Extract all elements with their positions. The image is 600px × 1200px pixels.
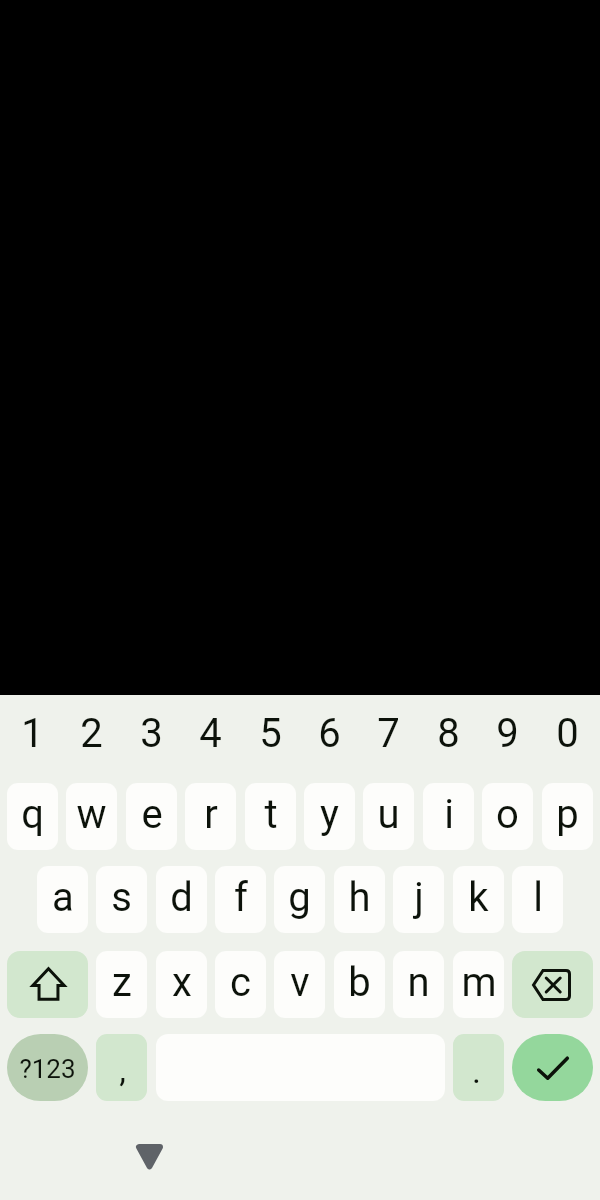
button[interactable]: h <box>334 866 385 933</box>
button[interactable]: 3 <box>122 698 181 770</box>
button[interactable]: s <box>96 866 147 933</box>
staticText: w <box>76 791 107 838</box>
staticText: 5 <box>259 710 282 757</box>
button[interactable]: 8 <box>419 698 478 770</box>
staticText: v <box>290 959 310 1006</box>
staticText: s <box>111 874 132 921</box>
button[interactable]: i <box>423 783 474 850</box>
button[interactable]: t <box>245 783 296 850</box>
staticText: t <box>264 791 278 838</box>
button[interactable]: y <box>304 783 355 850</box>
button[interactable]: n <box>393 951 444 1018</box>
button[interactable]: b <box>334 951 385 1018</box>
button[interactable]: q <box>7 783 58 850</box>
button[interactable]: 2 <box>62 698 121 770</box>
button[interactable]: Symbols <box>7 1034 88 1101</box>
button[interactable]: c <box>215 951 266 1018</box>
staticText: 7 <box>377 710 400 757</box>
button[interactable]: w <box>66 783 117 850</box>
staticText: . <box>472 1051 481 1091</box>
staticText: 2 <box>80 710 103 757</box>
staticText: o <box>496 791 519 838</box>
staticText: u <box>377 791 400 838</box>
button[interactable]: 7 <box>359 698 418 770</box>
staticText: ?123 <box>19 1054 76 1084</box>
staticText: m <box>461 959 497 1006</box>
staticText: y <box>320 791 339 838</box>
button[interactable]: m <box>453 951 504 1018</box>
staticText: c <box>230 959 251 1006</box>
button[interactable]: z <box>96 951 147 1018</box>
staticText: 4 <box>199 710 222 757</box>
staticText: q <box>21 791 44 838</box>
button[interactable]: e <box>126 783 177 850</box>
button[interactable]: 1 <box>3 698 62 770</box>
staticText: x <box>172 959 192 1006</box>
button[interactable]: Period <box>453 1034 504 1101</box>
button[interactable]: Shift <box>7 951 88 1018</box>
staticText: 0 <box>556 710 579 757</box>
button[interactable]: p <box>542 783 593 850</box>
button[interactable]: v <box>274 951 325 1018</box>
button[interactable]: d <box>156 866 207 933</box>
button[interactable]: g <box>274 866 325 933</box>
staticText: a <box>52 874 74 921</box>
staticText: 6 <box>318 710 341 757</box>
staticText: i <box>444 791 454 838</box>
staticText: e <box>141 791 163 838</box>
staticText: g <box>288 874 311 921</box>
staticText: b <box>348 959 371 1006</box>
button[interactable]: u <box>363 783 414 850</box>
staticText: z <box>112 959 132 1006</box>
button[interactable]: Comma <box>96 1034 147 1101</box>
staticText: 3 <box>140 710 163 757</box>
button[interactable]: k <box>453 866 504 933</box>
staticText: d <box>170 874 193 921</box>
button[interactable]: Enter <box>512 1034 593 1101</box>
staticText: 8 <box>437 710 460 757</box>
button[interactable]: 4 <box>181 698 240 770</box>
staticText: k <box>468 874 489 921</box>
button[interactable]: f <box>215 866 266 933</box>
button[interactable]: r <box>185 783 236 850</box>
button[interactable]: 9 <box>478 698 537 770</box>
button[interactable]: 5 <box>241 698 300 770</box>
button[interactable]: 6 <box>300 698 359 770</box>
staticText: 1 <box>21 710 44 757</box>
button[interactable]: 0 <box>538 698 597 770</box>
button[interactable]: a <box>37 866 88 933</box>
button[interactable]: o <box>482 783 533 850</box>
staticText: , <box>119 1050 126 1090</box>
staticText: h <box>348 874 371 921</box>
button[interactable]: x <box>156 951 207 1018</box>
staticText: l <box>533 874 543 921</box>
staticText: j <box>414 874 424 921</box>
staticText: f <box>234 874 248 921</box>
staticText: p <box>556 791 579 838</box>
staticText: n <box>407 959 430 1006</box>
button[interactable]: Backspace <box>512 951 593 1018</box>
staticText: r <box>204 791 218 838</box>
button[interactable]: l <box>512 866 563 933</box>
button[interactable]: j <box>393 866 444 933</box>
staticText: 9 <box>496 710 519 757</box>
button[interactable]: Hide keyboard <box>136 1145 163 1169</box>
